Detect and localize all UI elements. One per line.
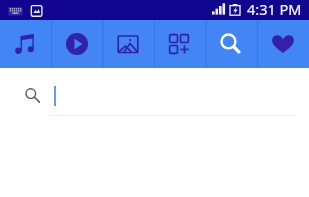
other: Search [25,88,41,104]
button[interactable]: Search [0,68,309,118]
button[interactable]: Apps [153,20,205,68]
button[interactable]: Music [0,20,51,68]
staticText: 4:31 PM [247,0,302,19]
button[interactable]: Photos [102,20,153,68]
button[interactable]: Search [205,20,257,68]
button[interactable]: Videos [51,20,102,68]
button[interactable]: Favorites [257,20,309,68]
